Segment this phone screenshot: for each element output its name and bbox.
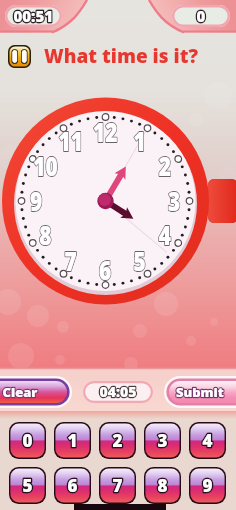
button[interactable]: Pause	[8, 45, 31, 68]
button[interactable]: Score 0	[172, 5, 230, 27]
button[interactable]: Submit	[163, 377, 233, 407]
button[interactable]: Clear	[3, 377, 73, 407]
button[interactable]: Key 2	[99, 422, 136, 459]
button[interactable]: Key 7	[99, 467, 136, 504]
button[interactable]: Key 6	[54, 467, 91, 504]
button[interactable]: Key 8	[144, 467, 181, 504]
button[interactable]: Key 5	[9, 467, 46, 504]
button[interactable]: Key 9	[189, 467, 226, 504]
button[interactable]: Key 4	[189, 422, 226, 459]
button[interactable]: Key 0	[9, 422, 46, 459]
button[interactable]: Timer 00:51	[5, 5, 62, 27]
button[interactable]: Key 1	[54, 422, 91, 459]
button[interactable]: Key 3	[144, 422, 181, 459]
